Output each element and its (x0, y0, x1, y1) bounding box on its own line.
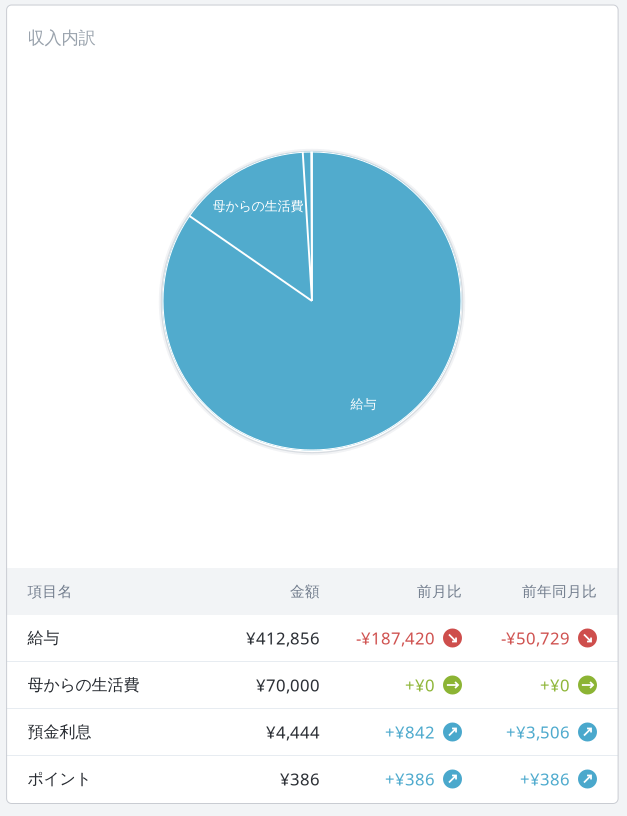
button[interactable]: ポイント (7, 756, 618, 802)
staticText: +¥386 (520, 768, 570, 790)
staticText: +¥0 (405, 674, 435, 696)
staticText: -¥187,420 (356, 627, 435, 649)
staticText: +¥842 (385, 721, 435, 743)
staticText: +¥0 (540, 674, 570, 696)
button[interactable]: 母からの生活費 (7, 662, 618, 708)
staticText: 給与 (28, 628, 60, 648)
staticText: +¥3,506 (506, 721, 570, 743)
staticText: -¥50,729 (501, 627, 570, 649)
button[interactable]: 給与 (7, 615, 618, 661)
staticText: 金額 (290, 582, 320, 601)
button[interactable]: 預金利息 (7, 709, 618, 755)
staticText: ¥412,856 (246, 627, 320, 649)
staticText: 預金利息 (28, 722, 92, 742)
staticText: 母からの生活費 (213, 198, 304, 214)
staticText: ¥386 (280, 768, 320, 790)
staticText: ¥70,000 (256, 674, 320, 696)
staticText: ¥4,444 (266, 721, 320, 743)
staticText: ポイント (28, 769, 92, 789)
staticText: 前月比 (417, 582, 462, 601)
staticText: 前年同月比 (522, 582, 597, 601)
staticText: 母からの生活費 (28, 675, 140, 695)
staticText: 項目名 (28, 582, 73, 601)
staticText: 給与 (351, 396, 377, 412)
staticText: +¥386 (385, 768, 435, 790)
staticText: 収入内訳 (28, 27, 96, 49)
